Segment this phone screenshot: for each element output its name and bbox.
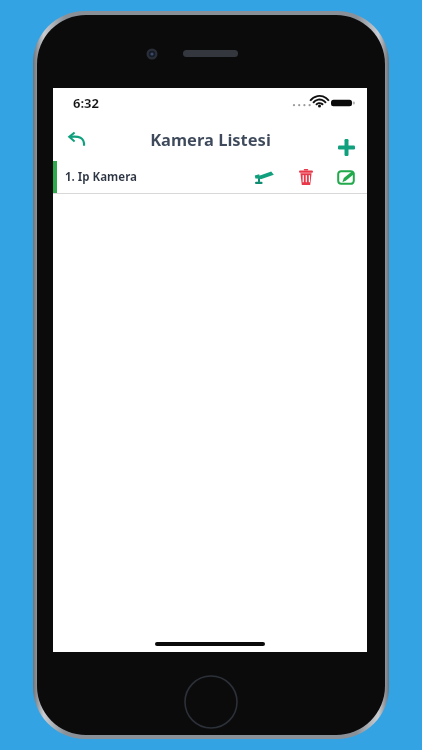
button[interactable]: Back xyxy=(59,123,93,157)
button[interactable]: View camera xyxy=(249,162,279,192)
staticText: 1. Ip Kamera xyxy=(65,169,137,185)
staticText: 6:32 xyxy=(73,94,99,112)
staticText: Kamera Listesi xyxy=(150,128,271,150)
button[interactable]: 1. Ip Kamera xyxy=(53,161,367,193)
button[interactable]: Add camera xyxy=(329,130,363,164)
button[interactable]: Delete camera xyxy=(291,162,321,192)
button[interactable]: Edit camera xyxy=(331,162,361,192)
